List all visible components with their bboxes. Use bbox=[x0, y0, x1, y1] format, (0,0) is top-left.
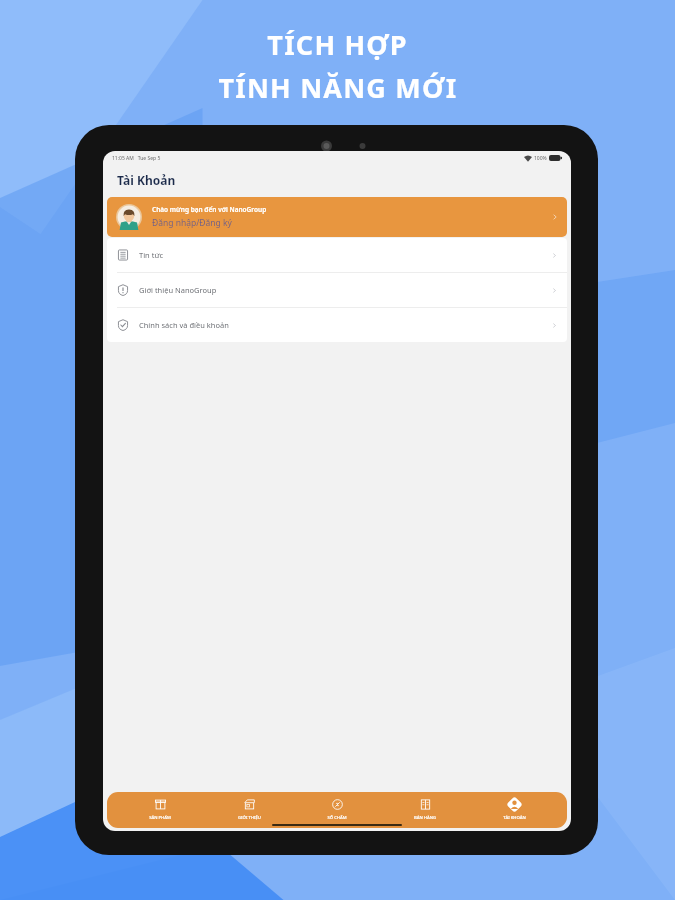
staticText: TÍNH NĂNG MỚI bbox=[218, 69, 458, 106]
staticText: GIỚI THIỆU bbox=[238, 815, 261, 821]
staticText: Giới thiệu NanoGroup bbox=[139, 285, 217, 295]
button[interactable]: SỔ CHẤM bbox=[302, 796, 372, 821]
staticText: BÁN HÀNG bbox=[414, 815, 436, 821]
staticText: SỔ CHẤM bbox=[327, 815, 347, 821]
button[interactable]: Chính sách và điều khoản bbox=[107, 308, 567, 342]
button[interactable]: TÀI KHOẢN bbox=[479, 796, 549, 821]
staticText: 100% bbox=[534, 155, 547, 162]
button[interactable]: Tin tức bbox=[107, 238, 567, 272]
button[interactable]: SẢN PHẨM bbox=[125, 796, 195, 821]
staticText: Tài Khoản bbox=[117, 172, 176, 188]
staticText: TÍCH HỢP bbox=[267, 26, 408, 63]
staticText: SẢN PHẨM bbox=[149, 815, 171, 821]
staticText: Chào mừng bạn đến với NanoGroup bbox=[152, 205, 267, 214]
staticText: Tin tức bbox=[139, 250, 164, 260]
staticText: Đăng nhập/Đăng ký bbox=[152, 217, 232, 229]
button[interactable]: BÁN HÀNG bbox=[390, 796, 460, 821]
button[interactable]: Giới thiệu NanoGroup bbox=[107, 273, 567, 307]
button[interactable]: GIỚI THIỆU bbox=[214, 796, 284, 821]
button[interactable]: Chào mừng bạn đến với NanoGroup bbox=[107, 197, 567, 237]
staticText: 11:05 AM Tue Sep 5 bbox=[112, 155, 161, 162]
staticText: Chính sách và điều khoản bbox=[139, 320, 229, 330]
staticText: TÀI KHOẢN bbox=[503, 815, 526, 821]
